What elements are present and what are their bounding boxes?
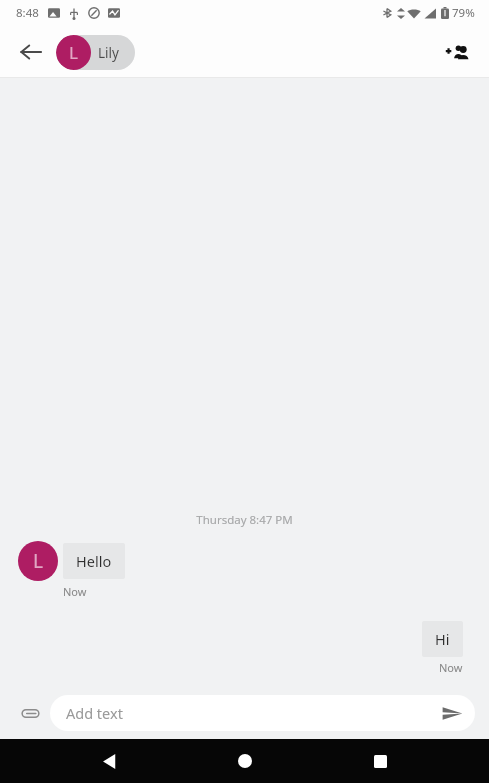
button[interactable]: Add text (50, 695, 475, 731)
button[interactable]: Hello (63, 543, 125, 579)
staticText: L (69, 41, 78, 64)
staticText: L (33, 548, 43, 574)
staticText: Now (63, 584, 87, 599)
button[interactable]: Add people (435, 31, 477, 73)
button[interactable]: Hi (422, 621, 463, 657)
staticText: Now (439, 660, 463, 675)
button[interactable]: Home (219, 739, 271, 783)
button[interactable]: Back (83, 739, 135, 783)
staticText: 79% (452, 5, 475, 21)
staticText: Thursday 8:47 PM (0, 512, 489, 528)
button[interactable]: Send (437, 698, 467, 728)
button[interactable]: Attach (12, 695, 48, 731)
staticText: Hi (435, 629, 450, 649)
staticText: Add text (66, 703, 437, 723)
button[interactable]: Back (10, 31, 52, 73)
staticText: Hello (76, 551, 112, 571)
button[interactable]: Recent apps (354, 739, 406, 783)
button[interactable]: L (56, 35, 135, 70)
button[interactable]: L (18, 541, 58, 581)
staticText: 8:48 (16, 5, 39, 21)
staticText: Lily (98, 44, 119, 62)
